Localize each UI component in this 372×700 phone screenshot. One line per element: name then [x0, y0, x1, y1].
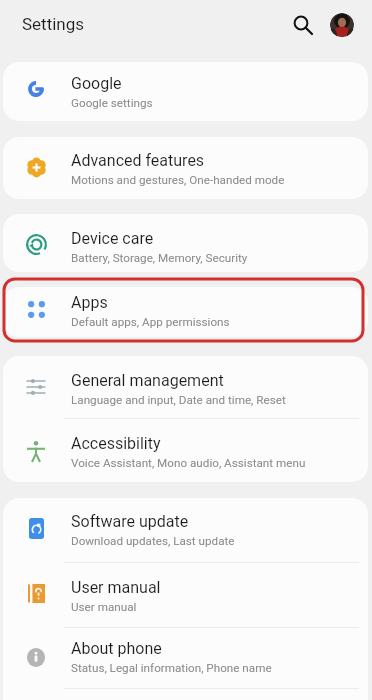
staticText: Status, Legal information, Phone name: [71, 661, 272, 675]
staticText: About phone: [71, 639, 162, 658]
button[interactable]: Search: [289, 11, 317, 39]
staticText: Google settings: [71, 96, 153, 110]
staticText: Motions and gestures, One-handed mode: [71, 173, 285, 187]
staticText: User manual: [71, 600, 137, 614]
staticText: Voice Assistant, Mono audio, Assistant m…: [71, 456, 306, 470]
staticText: User manual: [71, 578, 161, 597]
staticText: Settings: [22, 14, 85, 34]
button[interactable]: Advanced features: [0, 137, 372, 199]
staticText: Accessibility: [71, 434, 161, 453]
button[interactable]: Software update: [0, 498, 372, 562]
button[interactable]: Google: [0, 62, 372, 121]
button[interactable]: User manual: [0, 563, 372, 627]
staticText: Google: [71, 74, 122, 93]
staticText: Language and input, Date and time, Reset: [71, 393, 286, 407]
staticText: Download updates, Last update: [71, 534, 235, 548]
staticText: Default apps, App permissions: [71, 315, 230, 329]
staticText: General management: [71, 371, 224, 390]
button[interactable]: About phone: [0, 628, 372, 688]
button[interactable]: Apps: [0, 287, 372, 337]
button[interactable]: Accessibility: [0, 419, 372, 482]
staticText: Software update: [71, 512, 189, 531]
staticText: Device care: [71, 229, 154, 248]
button[interactable]: General management: [0, 356, 372, 418]
staticText: Advanced features: [71, 151, 205, 170]
staticText: Battery, Storage, Memory, Security: [71, 251, 248, 265]
button[interactable]: Device care: [0, 214, 372, 272]
button[interactable]: Account: [330, 13, 354, 37]
staticText: Apps: [71, 293, 108, 312]
